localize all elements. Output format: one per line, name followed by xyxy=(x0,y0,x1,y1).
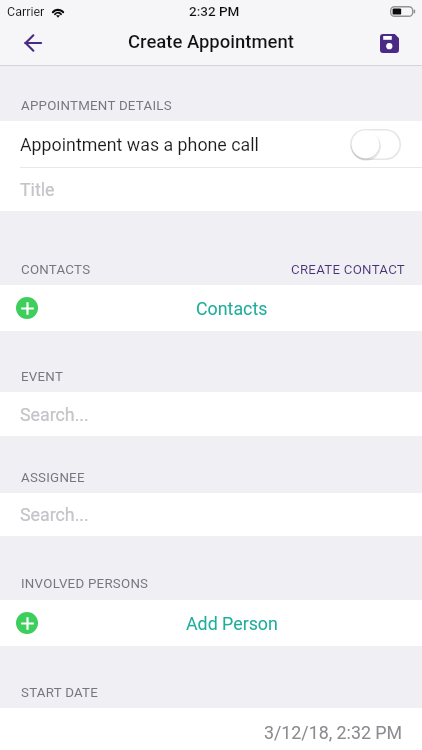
staticText: CONTACTS xyxy=(21,262,91,278)
button[interactable]: 3/12/18, 2:32 PM xyxy=(0,708,422,750)
button[interactable]: Title xyxy=(0,168,422,211)
button[interactable]: Add xyxy=(0,600,422,646)
staticText: Search... xyxy=(20,404,89,425)
staticText: Appointment was a phone call xyxy=(20,134,350,155)
staticText: ASSIGNEE xyxy=(21,470,85,486)
button[interactable]: Search... xyxy=(0,493,422,536)
button[interactable]: CREATE CONTACT xyxy=(277,256,422,285)
staticText: START DATE xyxy=(21,685,99,701)
staticText: INVOLVED PERSONS xyxy=(21,576,149,592)
staticText: Create Appointment xyxy=(128,31,294,53)
staticText: Add Person xyxy=(186,613,278,634)
staticText: CREATE CONTACT xyxy=(291,262,406,278)
button[interactable]: Add xyxy=(0,285,422,331)
staticText: Contacts xyxy=(196,298,268,319)
staticText: 3/12/18, 2:32 PM xyxy=(264,722,403,743)
button[interactable]: Save xyxy=(368,23,410,65)
button[interactable]: Search... xyxy=(0,392,422,436)
other: Add xyxy=(16,297,38,319)
staticText: APPOINTMENT DETAILS xyxy=(21,98,172,114)
button[interactable]: Back xyxy=(12,23,54,65)
staticText: Search... xyxy=(20,504,89,525)
staticText: Carrier xyxy=(7,4,45,19)
staticText: Title xyxy=(20,179,55,200)
staticText: 2:32 PM xyxy=(189,3,240,19)
button[interactable]: Appointment was a phone call xyxy=(0,121,422,167)
button[interactable]: Appointment was a phone call xyxy=(350,129,401,160)
other: Add xyxy=(16,612,38,634)
staticText: EVENT xyxy=(21,369,64,385)
